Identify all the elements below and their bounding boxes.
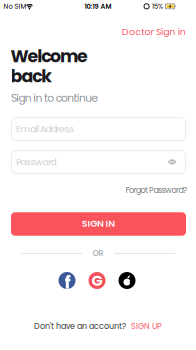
staticText: No SIM [3, 2, 26, 11]
button[interactable]: SIGN IN [11, 212, 186, 236]
staticText: SIGN IN [82, 217, 115, 230]
staticText: Password [16, 156, 56, 168]
button[interactable]: Sign in with Apple [118, 272, 135, 289]
staticText: 15% [152, 2, 163, 11]
staticText: G [91, 270, 102, 290]
staticText: Forgot Password? [125, 185, 187, 196]
staticText: Email Address [16, 123, 74, 135]
button[interactable]: Sign in with Google [88, 272, 105, 289]
button[interactable]: Doctor Sign in [96, 26, 186, 38]
staticText: Don't have an account? [34, 321, 126, 332]
staticText: back [10, 64, 52, 88]
staticText: Sign in to continue [11, 91, 98, 105]
button[interactable]: Show password [168, 159, 176, 165]
staticText: Welcome [10, 44, 88, 68]
staticText: 10:19 AM [84, 2, 111, 11]
staticText: OR [92, 248, 103, 259]
staticText: Doctor Sign in [122, 25, 186, 38]
staticText: f [65, 271, 71, 295]
staticText: SIGN UP [131, 321, 162, 332]
button[interactable]: Forgot Password? [87, 184, 187, 196]
button[interactable]: SIGN UP [131, 321, 162, 332]
button[interactable]: Sign in with Facebook [58, 272, 75, 289]
